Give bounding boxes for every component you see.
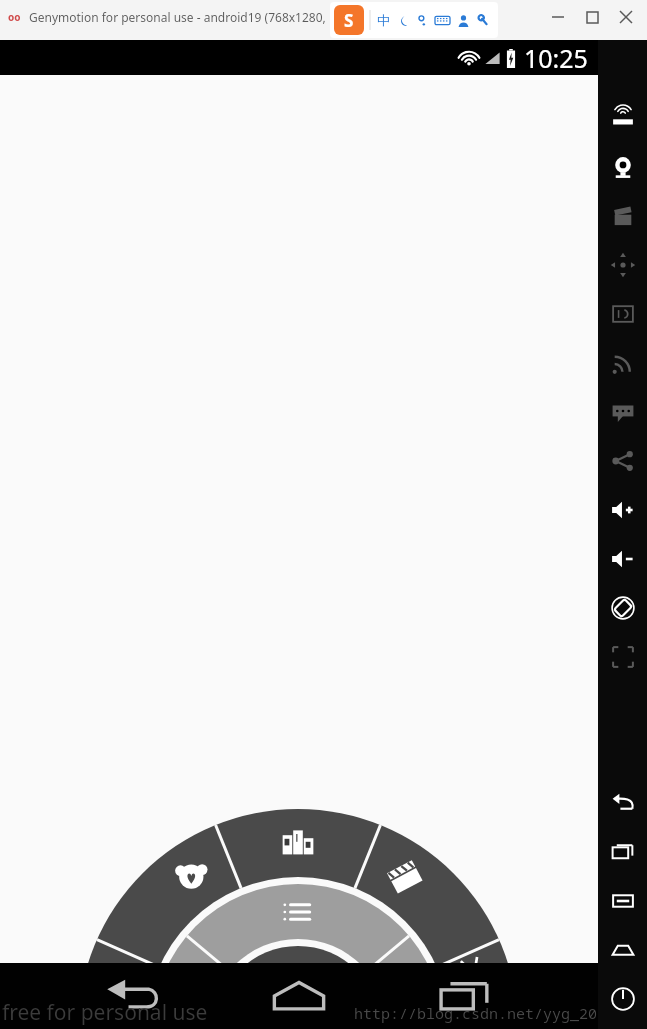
button[interactable]: Keyboard	[435, 13, 450, 28]
staticText: http://blog.csdn.net/yyg_20	[354, 1003, 598, 1023]
staticText: oo	[8, 10, 21, 24]
button[interactable]: Clapper	[598, 191, 647, 240]
button[interactable]: Home	[598, 925, 647, 974]
button[interactable]: Settings	[477, 14, 490, 27]
button[interactable]: Volume down	[598, 534, 647, 583]
button[interactable]: Share	[598, 436, 647, 485]
button[interactable]: Back	[598, 778, 647, 827]
button[interactable]: Recents	[423, 963, 507, 1029]
staticText: S	[344, 9, 354, 32]
button[interactable]: Maximize	[575, 0, 609, 34]
button[interactable]: Minimize	[541, 0, 575, 34]
button[interactable]: Sogou input	[334, 5, 364, 35]
button[interactable]: Identifiers	[598, 289, 647, 338]
button[interactable]: Account	[457, 14, 470, 27]
staticText: 中	[377, 12, 390, 28]
staticText: 10:25	[524, 41, 588, 75]
button[interactable]: Circular menu	[0, 75, 598, 1029]
button[interactable]: Network	[598, 338, 647, 387]
button[interactable]: SMS	[598, 387, 647, 436]
button[interactable]: Menu	[598, 876, 647, 925]
button[interactable]: Zoom 1:1	[598, 632, 647, 681]
button[interactable]: Home	[257, 963, 341, 1029]
button[interactable]: Volume up	[598, 485, 647, 534]
button[interactable]: Close	[609, 0, 643, 34]
button[interactable]: Back	[91, 963, 175, 1029]
button[interactable]: GPS	[598, 93, 647, 142]
button[interactable]: Recents	[598, 827, 647, 876]
button[interactable]: Power	[598, 974, 647, 1023]
button[interactable]: Rotate	[598, 583, 647, 632]
staticText: Genymotion for personal use - android19 …	[29, 9, 326, 25]
staticText: free for personal use	[2, 998, 208, 1027]
button[interactable]: Camera	[598, 142, 647, 191]
button[interactable]: Night mode	[397, 14, 410, 27]
button[interactable]: Dpad	[598, 240, 647, 289]
